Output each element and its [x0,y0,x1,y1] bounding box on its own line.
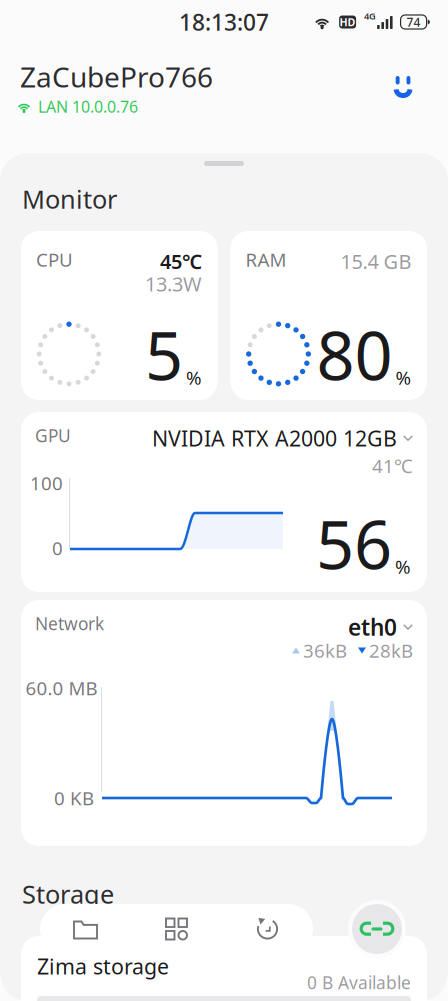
staticText: Zima storage [37,952,169,980]
staticText: 5 [145,310,183,398]
staticText: 45℃ [160,248,202,275]
staticText: 0 B Available [307,971,411,994]
staticText: % [395,365,411,390]
staticText: 0 KB [54,786,94,810]
staticText: 4G [364,10,376,22]
button[interactable]: Files [40,904,131,954]
staticText: Storage [22,877,114,911]
staticText: Network [35,612,104,635]
staticText: 18:13:07 [179,7,269,37]
button[interactable]: Apps [131,904,222,954]
button[interactable]: Connect [350,902,404,956]
staticText: 13.3W [145,271,202,297]
staticText: 56 [316,499,392,587]
staticText: 100 [30,471,63,495]
staticText: 74 [407,14,421,30]
staticText: CPU [36,247,73,272]
staticText: 0 [52,536,63,560]
staticText: eth0 [348,612,397,642]
staticText: 28kB [369,638,413,663]
staticText: LAN 10.0.0.76 [38,96,138,117]
button[interactable]: Recents [222,904,313,954]
staticText: % [186,365,202,390]
staticText: HD [340,15,356,29]
staticText: 41℃ [372,453,413,478]
staticText: % [395,554,411,579]
staticText: 15.4 GB [340,248,411,275]
staticText: 60.0 MB [25,676,97,700]
staticText: 80 [316,310,392,398]
staticText: GPU [35,424,71,447]
staticText: Monitor [22,182,117,216]
staticText: RAM [245,247,286,272]
staticText: 36kB [303,638,347,663]
staticText: ZaCubePro766 [20,58,213,95]
staticText: NVIDIA RTX A2000 12GB [152,424,397,452]
button[interactable]: Profile [381,64,425,108]
